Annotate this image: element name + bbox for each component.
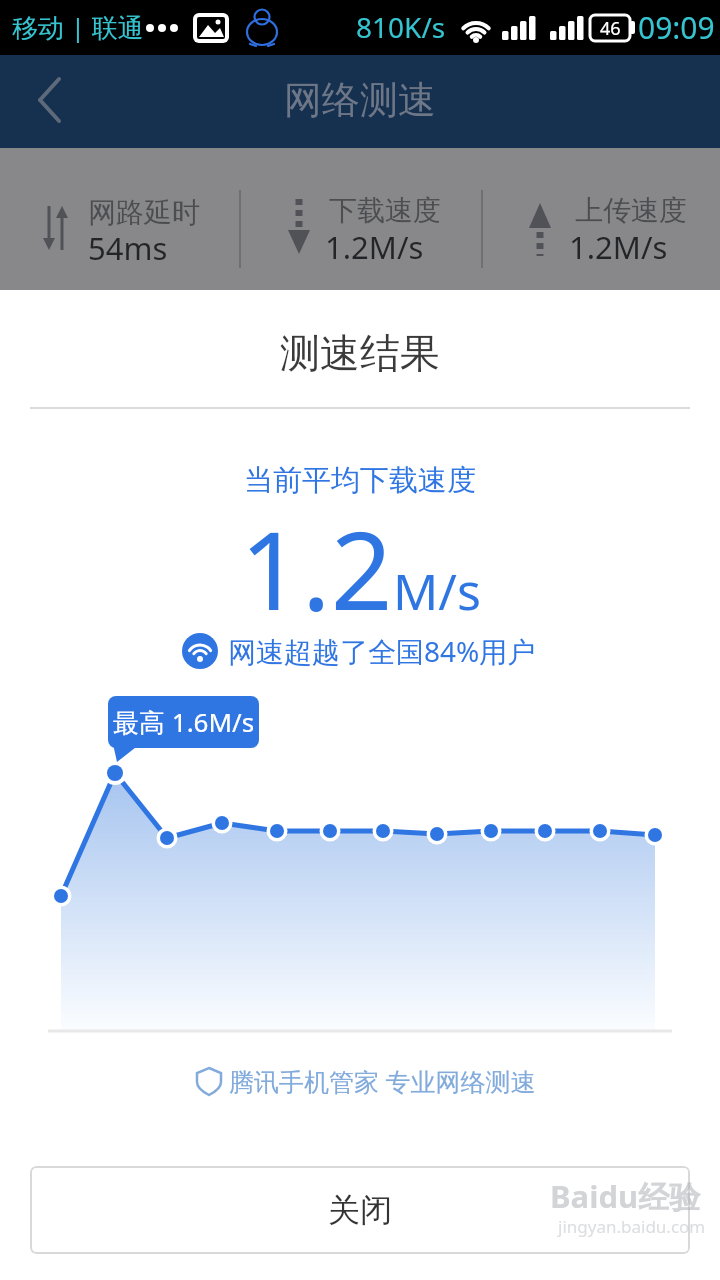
staticText: 当前平均下载速度 (244, 462, 476, 499)
staticText: 最高 1.6M/s (113, 704, 255, 740)
staticText: 810K/s (356, 8, 446, 46)
staticText: 测速结果 (280, 328, 440, 378)
staticText: 网速超越了全国84%用户 (228, 632, 536, 670)
button[interactable] (20, 70, 80, 130)
staticText: 上传速度 (575, 193, 687, 228)
staticText: 1.2M/s (325, 226, 424, 268)
staticText: 54ms (88, 227, 168, 269)
staticText: 腾讯手机管家 专业网络测速 (229, 1064, 536, 1098)
staticText: Baidu经验 (550, 1175, 701, 1217)
staticText: jingyan.baidu.com (558, 1215, 706, 1238)
button[interactable]: 关闭 (30, 1166, 690, 1254)
staticText: 网络测速 (284, 76, 436, 124)
staticText: 09:09 (638, 7, 715, 48)
staticText: 网路延时 (88, 195, 200, 230)
staticText: 1.2M/s (569, 226, 668, 268)
staticText: 下载速度 (329, 193, 441, 228)
staticText: 1.2 (240, 495, 393, 642)
staticText: 46 (600, 16, 621, 41)
staticText: M/s (393, 557, 481, 625)
staticText: 移动 | 联通 (12, 9, 144, 45)
staticText: 关闭 (328, 1190, 392, 1230)
